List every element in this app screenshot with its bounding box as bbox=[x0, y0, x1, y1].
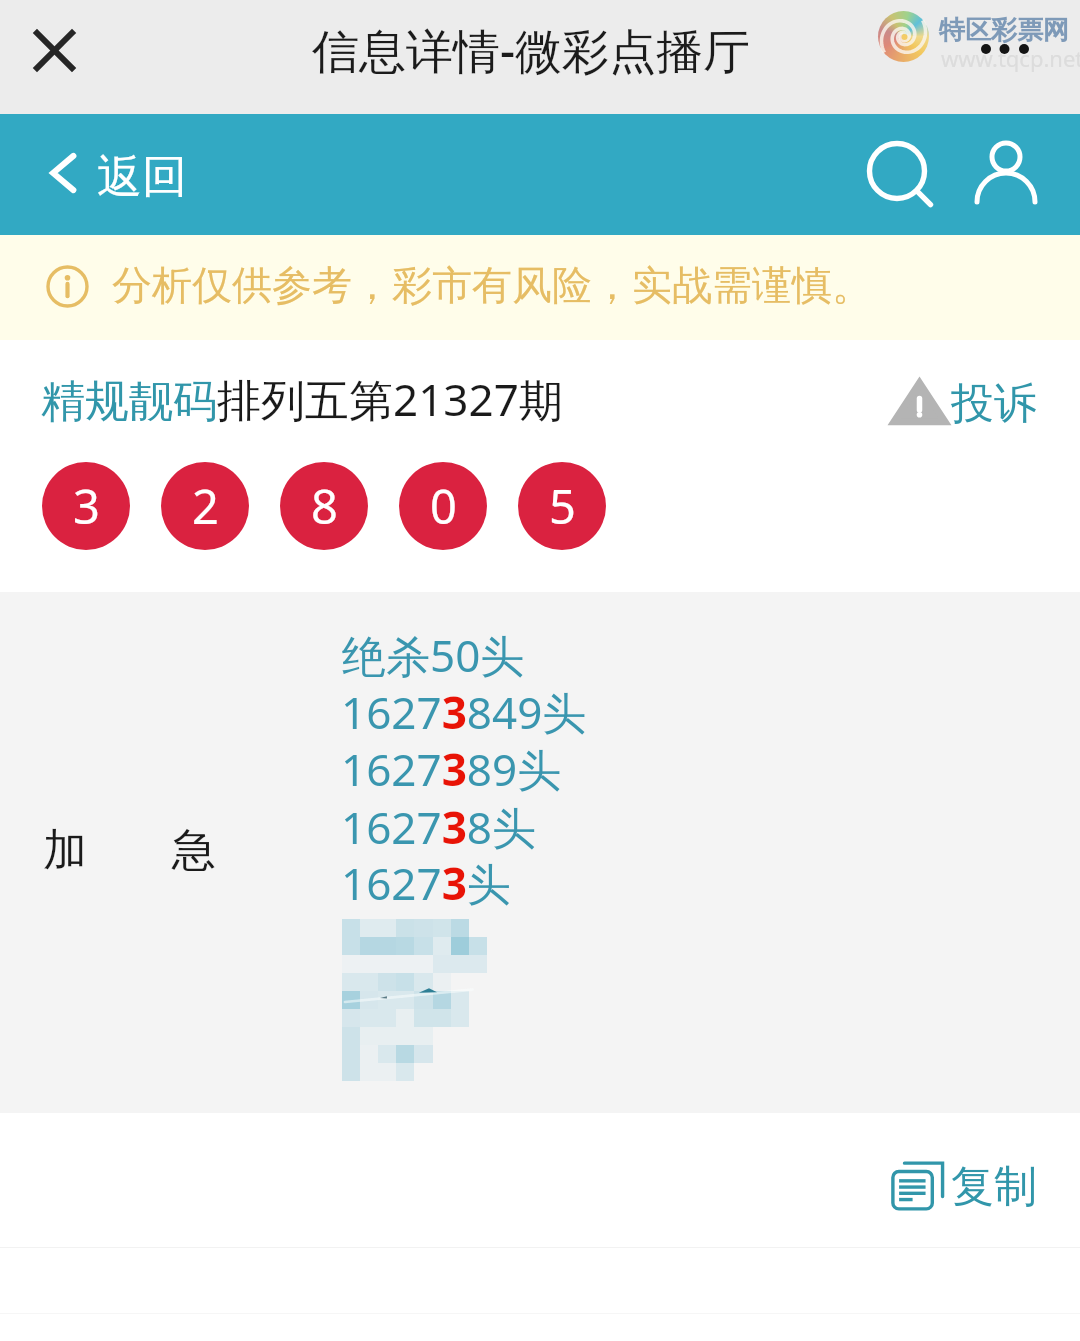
button[interactable]: Close bbox=[14, 10, 94, 90]
staticText: 5 bbox=[549, 474, 576, 538]
staticText: 162738头 bbox=[341, 797, 537, 857]
staticText: 返回 bbox=[97, 149, 187, 206]
staticText: 精规靓码排列五第21327期 bbox=[41, 369, 563, 429]
staticText: 0 bbox=[430, 474, 457, 538]
staticText: 投诉 bbox=[951, 377, 1037, 431]
button[interactable]: 复制 bbox=[885, 1151, 1040, 1213]
button[interactable]: Account bbox=[967, 134, 1047, 214]
staticText: 加 bbox=[43, 823, 87, 878]
staticText: 复制 bbox=[951, 1160, 1037, 1214]
button[interactable]: 投诉 bbox=[886, 371, 1038, 431]
staticText: 信息详情-微彩点播厅 bbox=[312, 18, 751, 82]
staticText: 3 bbox=[73, 474, 100, 538]
staticText: 16273头 bbox=[341, 853, 511, 913]
staticText: www.tqcp.net bbox=[941, 43, 1080, 73]
staticText: 1627389头 bbox=[341, 739, 562, 799]
staticText: 特区彩票网 bbox=[939, 14, 1069, 47]
staticText: 分析仅供参考，彩市有风险，实战需谨慎。 bbox=[112, 260, 872, 310]
staticText: 绝杀50头 bbox=[342, 625, 525, 685]
button[interactable]: 返回 bbox=[36, 140, 201, 208]
staticText: 2 bbox=[192, 474, 219, 538]
staticText: 8 bbox=[311, 474, 338, 538]
staticText: 急 bbox=[172, 823, 216, 878]
button[interactable]: Search bbox=[857, 140, 939, 222]
staticText: 16273849头 bbox=[341, 682, 587, 742]
